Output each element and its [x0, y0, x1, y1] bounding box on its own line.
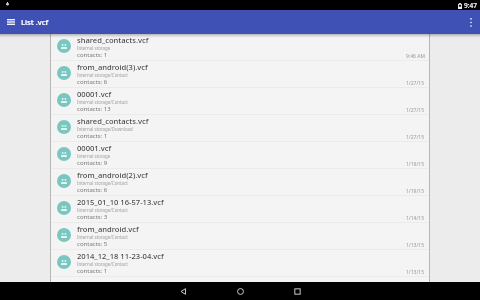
staticText: contacts: 3	[77, 213, 108, 221]
staticText: 00001.vcf	[77, 89, 112, 99]
staticText: 1/19/15	[406, 161, 425, 168]
staticText: 1/27/15	[406, 134, 425, 141]
staticText: Internal storage/Contact	[77, 234, 128, 240]
button[interactable]: Recent apps	[279, 282, 315, 300]
staticText: contacts: 1	[77, 51, 108, 59]
staticText: contacts: 6	[77, 186, 108, 194]
staticText: 2015_01_10 16-57-13.vcf	[77, 197, 164, 207]
staticText: Internal storage/Contact	[77, 72, 128, 78]
staticText: contacts: 9	[77, 159, 108, 167]
button[interactable]: Back	[165, 282, 201, 300]
button[interactable]: 2015_01_10 16-57-13.vcf	[51, 196, 429, 223]
button[interactable]: 00001.vcf	[51, 88, 429, 115]
staticText: 1/14/15	[406, 215, 425, 222]
staticText: Internal storage/Contact	[77, 99, 128, 105]
staticText: Internal storage/Contact	[77, 180, 128, 186]
button[interactable]: shared_contacts.vcf	[51, 115, 429, 142]
staticText: Internal storage	[77, 45, 111, 51]
staticText: Internal storage/Contact	[77, 261, 128, 267]
staticText: Internal storage	[77, 153, 111, 159]
button[interactable]: from_android(2).vcf	[51, 169, 429, 196]
staticText: contacts: 13	[77, 105, 111, 113]
button[interactable]: Open navigation drawer	[0, 10, 21, 34]
staticText: 1/27/15	[406, 80, 425, 87]
staticText: 1/27/15	[406, 107, 425, 114]
staticText: 9:47	[464, 1, 477, 10]
button[interactable]: 2014_12_18 11-23-04.vcf	[51, 250, 429, 277]
button[interactable]: 00001.vcf	[51, 142, 429, 169]
staticText: contacts: 1	[77, 132, 108, 140]
button[interactable]: More options	[461, 10, 480, 34]
staticText: Internal storage/Contact	[77, 207, 128, 213]
staticText: from_android(2).vcf	[77, 170, 148, 180]
staticText: 1/13/15	[406, 269, 425, 276]
staticText: from_android(3).vcf	[77, 62, 148, 72]
staticText: 1/19/15	[406, 188, 425, 195]
staticText: 2014_12_18 11-23-04.vcf	[77, 251, 164, 261]
staticText: List .vcf	[21, 17, 49, 27]
button[interactable]: from_android(3).vcf	[51, 61, 429, 88]
staticText: Internal storage/Download	[77, 126, 133, 132]
staticText: 1/13/15	[406, 242, 425, 249]
button[interactable]: Home	[222, 282, 258, 300]
staticText: from_android.vcf	[77, 224, 139, 234]
staticText: 00001.vcf	[77, 143, 112, 153]
staticText: contacts: 5	[77, 240, 108, 248]
staticText: 9:46 AM	[406, 53, 425, 60]
button[interactable]: shared_contacts.vcf	[51, 34, 429, 61]
staticText: shared_contacts.vcf	[77, 35, 149, 45]
staticText: shared_contacts.vcf	[77, 116, 149, 126]
button[interactable]: from_android.vcf	[51, 223, 429, 250]
staticText: contacts: 6	[77, 78, 108, 86]
staticText: contacts: 1	[77, 267, 108, 275]
